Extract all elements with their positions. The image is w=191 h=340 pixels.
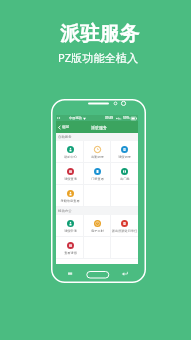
button[interactable]: 查看请假	[56, 237, 84, 258]
staticText: 派出所派驻日常任务	[111, 229, 138, 233]
staticText: 请假记录	[118, 155, 131, 159]
button[interactable]: 助手中心	[56, 141, 84, 162]
staticText: 查看请假	[64, 251, 77, 255]
staticText: PZ版功能全植入	[58, 50, 139, 65]
staticText: 电子工时	[91, 229, 104, 233]
staticText: 自助服务	[58, 135, 72, 139]
staticText: 09:39	[105, 116, 114, 120]
button[interactable]: 电子工时	[84, 215, 111, 236]
staticText: 中国移动	[69, 116, 82, 120]
staticText: 请假查询	[64, 177, 77, 181]
button[interactable]: 派出所派驻日常任务	[111, 215, 138, 236]
staticText: 出门条	[120, 177, 130, 181]
button[interactable]: 请假查询	[56, 163, 84, 184]
button[interactable]: 门禁查看	[84, 163, 111, 184]
button[interactable]: 出门条	[111, 163, 138, 184]
staticText: 移动办公	[58, 209, 72, 213]
button[interactable]: 请假记录	[111, 141, 138, 162]
button[interactable]: 返回	[56, 123, 72, 132]
staticText: 派驻服务	[91, 125, 107, 130]
staticText: 派驻服务	[60, 21, 140, 46]
staticText: 出勤记录	[91, 155, 104, 159]
button[interactable]: 出勤记录	[84, 141, 111, 162]
staticText: 返回	[62, 125, 70, 130]
staticText: 考勤信息查看	[60, 199, 80, 203]
staticText: 助手中心	[64, 155, 77, 159]
staticText: 请假申请	[64, 229, 77, 233]
staticText: 59%	[123, 116, 130, 120]
staticText: 门禁查看	[91, 177, 104, 181]
button[interactable]: 请假申请	[56, 215, 84, 236]
button[interactable]: 考勤信息查看	[56, 185, 84, 206]
